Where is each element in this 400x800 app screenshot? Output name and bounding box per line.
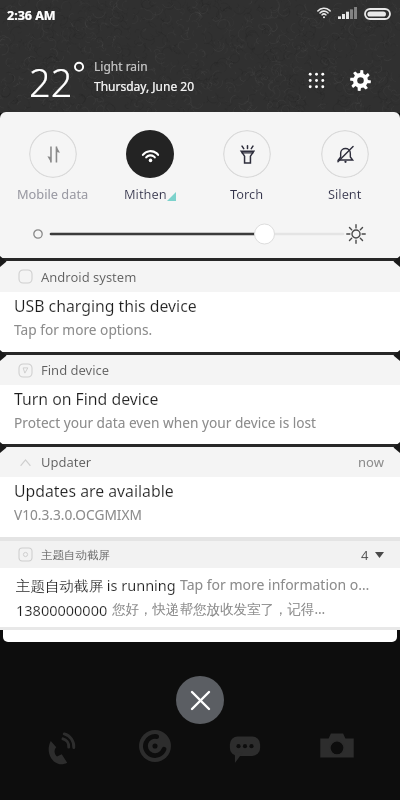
- button[interactable]: Brightness: [0, 219, 400, 249]
- staticText: 2:36 AM: [7, 7, 56, 24]
- button[interactable]: 主题自动截屏: [0, 541, 400, 627]
- button[interactable]: Torch: [201, 130, 293, 202]
- button[interactable]: Android system: [0, 261, 400, 352]
- staticText: V10.3.3.0.OCGMIXM: [14, 505, 142, 524]
- staticText: Updater: [41, 453, 92, 471]
- button[interactable]: Messages: [219, 722, 271, 774]
- staticText: Android system: [41, 268, 137, 286]
- button[interactable]: Updater: [0, 447, 400, 537]
- staticText: Mithen: [124, 185, 167, 202]
- staticText: Turn on Find device: [14, 388, 159, 410]
- staticText: Torch: [230, 185, 264, 202]
- button[interactable]: Phone: [36, 723, 88, 775]
- staticText: Protect your data even when your device …: [14, 413, 317, 432]
- button[interactable]: Close: [176, 676, 224, 724]
- button[interactable]: Silent: [299, 130, 391, 202]
- staticText: Updates are available: [14, 480, 174, 502]
- staticText: Tap for more options.: [14, 320, 153, 339]
- button[interactable]: Mithen: [104, 130, 196, 202]
- staticText: Silent: [328, 185, 362, 202]
- staticText: Tap for more information o…: [180, 575, 370, 594]
- button[interactable]: Browser: [129, 720, 181, 772]
- staticText: 4: [361, 546, 369, 564]
- staticText: 13800000000: [16, 600, 112, 620]
- staticText: Mobile data: [17, 185, 89, 202]
- staticText: Light rain: [94, 58, 148, 74]
- staticText: Thursday, June 20: [94, 78, 195, 94]
- staticText: 22: [29, 56, 73, 108]
- staticText: 主题自动截屏: [41, 548, 110, 562]
- staticText: 您好，快递帮您放收发室了，记得…: [112, 600, 326, 618]
- staticText: 主题自动截屏 is running: [16, 575, 180, 595]
- button[interactable]: Quick apps: [300, 64, 332, 96]
- staticText: USB charging this device: [14, 295, 197, 317]
- staticText: now: [358, 453, 384, 471]
- button[interactable]: Find device: [0, 355, 400, 444]
- staticText: Find device: [41, 361, 110, 379]
- button[interactable]: Mobile data: [7, 130, 99, 202]
- button[interactable]: Settings: [344, 64, 376, 96]
- button[interactable]: Camera: [311, 720, 363, 772]
